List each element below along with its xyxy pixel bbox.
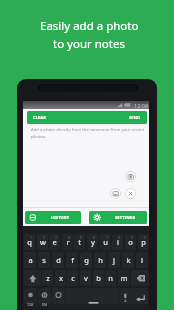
staticText: l bbox=[141, 255, 143, 265]
staticText: 5 bbox=[80, 235, 83, 240]
button[interactable]: v bbox=[80, 270, 91, 286]
staticText: CLEAR bbox=[33, 115, 47, 121]
staticText: v bbox=[84, 273, 88, 283]
staticText: x bbox=[59, 273, 63, 283]
button[interactable]: f bbox=[66, 252, 78, 268]
button[interactable] bbox=[66, 288, 118, 304]
staticText: 2 bbox=[43, 235, 46, 240]
staticText: p bbox=[141, 237, 146, 247]
staticText: n bbox=[108, 273, 113, 283]
staticText: SEND bbox=[129, 115, 141, 121]
button[interactable] bbox=[24, 270, 41, 286]
staticText: 7 bbox=[106, 235, 109, 240]
staticText: EN bbox=[42, 302, 47, 307]
staticText: y bbox=[91, 237, 95, 247]
button[interactable]: z bbox=[42, 270, 53, 286]
button[interactable]: 9 bbox=[125, 234, 136, 250]
staticText: Easily add a photo bbox=[40, 18, 139, 34]
button[interactable]: j bbox=[108, 252, 120, 268]
staticText: j bbox=[113, 255, 115, 265]
staticText: 9 bbox=[131, 235, 134, 240]
button[interactable]: 4 bbox=[62, 234, 73, 250]
staticText: o bbox=[128, 237, 133, 247]
staticText: w bbox=[40, 237, 46, 247]
button[interactable]: l bbox=[136, 252, 148, 268]
button[interactable]: s bbox=[38, 252, 50, 268]
staticText: HISTORY bbox=[51, 215, 70, 221]
button[interactable] bbox=[52, 288, 65, 304]
staticText: q bbox=[27, 237, 32, 247]
staticText: h bbox=[98, 255, 103, 265]
staticText: 1 bbox=[30, 235, 33, 240]
staticText: 0 bbox=[144, 235, 147, 240]
staticText: 4 bbox=[68, 235, 71, 240]
button[interactable]: h bbox=[94, 252, 106, 268]
staticText: m bbox=[120, 273, 128, 283]
button[interactable]: 7 bbox=[100, 234, 111, 250]
staticText: k bbox=[126, 255, 131, 265]
button[interactable] bbox=[110, 188, 121, 199]
staticText: u bbox=[103, 237, 108, 247]
button[interactable]: d bbox=[52, 252, 64, 268]
button[interactable]: 0 bbox=[138, 234, 149, 250]
staticText: c bbox=[71, 273, 75, 283]
button[interactable]: x bbox=[55, 270, 66, 286]
staticText: b bbox=[96, 273, 101, 283]
staticText: 8 bbox=[118, 235, 121, 240]
staticText: SETTINGS bbox=[115, 215, 135, 221]
staticText: t bbox=[78, 237, 81, 247]
button[interactable]: m bbox=[118, 270, 129, 286]
staticText: a bbox=[28, 255, 33, 265]
staticText: s bbox=[42, 255, 46, 265]
button[interactable]: 3 bbox=[49, 234, 60, 250]
staticText: 12# bbox=[27, 302, 34, 307]
button[interactable]: SETTINGS bbox=[89, 211, 147, 224]
staticText: r bbox=[66, 237, 70, 247]
button[interactable]: c bbox=[67, 270, 78, 286]
button[interactable] bbox=[119, 288, 132, 304]
button[interactable]: HISTORY bbox=[25, 211, 81, 224]
staticText: 3 bbox=[55, 235, 58, 240]
button[interactable]: 2 bbox=[37, 234, 48, 250]
staticText: 12:08 bbox=[134, 102, 149, 108]
button[interactable]: k bbox=[122, 252, 134, 268]
button[interactable]: g bbox=[80, 252, 92, 268]
staticText: i bbox=[117, 237, 119, 247]
button[interactable] bbox=[132, 288, 148, 304]
staticText: e bbox=[52, 237, 57, 247]
button[interactable]: 6 bbox=[87, 234, 98, 250]
button[interactable] bbox=[125, 171, 136, 182]
staticText: to your notes bbox=[53, 36, 125, 52]
button[interactable]: 5 bbox=[74, 234, 85, 250]
button[interactable] bbox=[38, 288, 51, 304]
button[interactable]: n bbox=[105, 270, 116, 286]
staticText: f bbox=[71, 255, 74, 265]
staticText: g bbox=[84, 255, 89, 265]
button[interactable]: 8 bbox=[112, 234, 123, 250]
staticText: z bbox=[46, 273, 50, 283]
button[interactable] bbox=[24, 288, 37, 304]
button[interactable]: CLEAR bbox=[27, 111, 147, 124]
staticText: Add a photo directly from the camera or … bbox=[31, 127, 145, 139]
staticText: d bbox=[56, 255, 61, 265]
button[interactable]: a bbox=[24, 252, 36, 268]
staticText: 6 bbox=[93, 235, 96, 240]
button[interactable] bbox=[125, 188, 136, 199]
button[interactable] bbox=[131, 270, 149, 286]
button[interactable]: b bbox=[93, 270, 104, 286]
button[interactable]: 1 bbox=[24, 234, 35, 250]
